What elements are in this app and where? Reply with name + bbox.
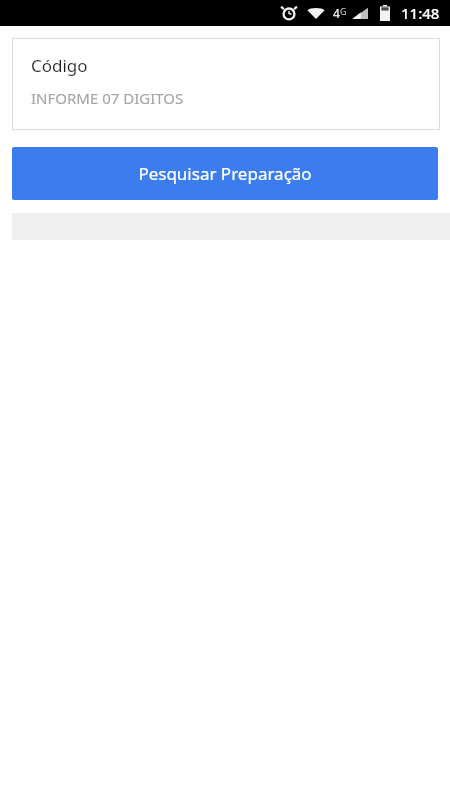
- staticText: Pesquisar Preparação: [138, 162, 312, 185]
- staticText: 4: [333, 5, 340, 21]
- button[interactable]: Pesquisar Preparação: [12, 147, 438, 200]
- staticText: G: [340, 5, 347, 17]
- button[interactable]: Código: [12, 38, 440, 130]
- staticText: 11:48: [401, 3, 440, 23]
- staticText: Código: [31, 54, 88, 77]
- staticText: INFORME 07 DIGITOS: [31, 88, 184, 108]
